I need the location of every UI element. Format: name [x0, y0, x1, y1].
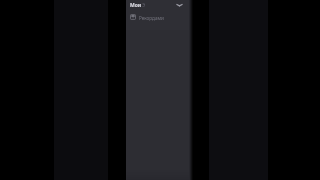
button[interactable]: Мои	[126, 0, 189, 11]
staticText: Мои	[130, 2, 142, 9]
button[interactable]: Documents	[126, 11, 189, 23]
staticText: Э	[142, 2, 146, 9]
button[interactable]: Expand	[175, 1, 184, 10]
staticText: Рекордами	[139, 15, 164, 21]
other: Documents	[130, 14, 136, 20]
